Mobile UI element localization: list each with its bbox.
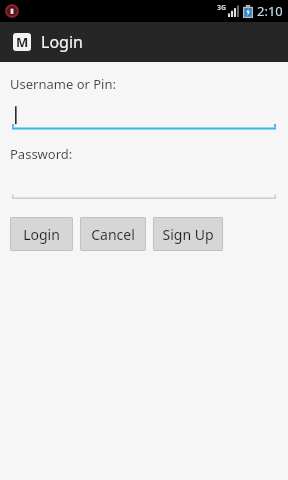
staticText: Password: — [10, 145, 73, 163]
staticText: Sign Up — [162, 225, 214, 244]
button[interactable]: Cancel — [80, 217, 146, 251]
staticText: Cancel — [91, 225, 135, 244]
staticText: Login — [41, 31, 83, 53]
button[interactable] — [0, 171, 288, 200]
staticText: 3G — [217, 3, 227, 13]
button[interactable]: Sign Up — [153, 217, 223, 251]
staticText: Username or Pin: — [10, 75, 116, 93]
button[interactable] — [0, 101, 288, 130]
staticText: 2:10 — [257, 2, 283, 20]
button[interactable]: Login — [10, 217, 73, 251]
staticText: Login — [23, 225, 60, 244]
staticText: M — [16, 33, 29, 51]
button[interactable]: M — [0, 22, 288, 62]
